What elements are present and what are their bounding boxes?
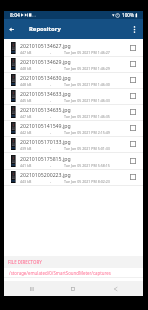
staticText: /storage/emulated/0/SmartSoundMeter/capt… [9, 270, 111, 276]
staticText: 442 kB [20, 130, 32, 135]
button[interactable]: Select 20210105141549.jpg [126, 120, 140, 136]
staticText: FILE DIRECTORY [8, 259, 42, 265]
button[interactable]: Select 20210105134627.jpg [126, 40, 140, 56]
button[interactable]: Select 20210105134630.jpg [126, 72, 140, 88]
staticText: 20210105134629.jpg [20, 58, 71, 65]
staticText: 448 kB [20, 82, 32, 87]
staticText: 20210105134635.jpg [20, 106, 71, 113]
staticText: 448 kB [20, 66, 32, 71]
staticText: 445 kB [20, 98, 32, 103]
button[interactable]: Select 20210105134633.jpg [126, 88, 140, 104]
button[interactable]: 20210105141549.jpg [4, 120, 143, 136]
button[interactable]: Repository [29, 25, 61, 33]
staticText: 20210105170133.jpg [20, 138, 71, 145]
staticText: Tue Jan 05 2021 PM 8:02:23 [64, 179, 110, 184]
staticText: 439 kB [20, 146, 32, 151]
staticText: 8:04 [10, 12, 20, 19]
button[interactable]: Select 20210105134629.jpg [126, 56, 140, 72]
button[interactable]: 20210105170133.jpg [4, 136, 143, 152]
button[interactable]: 20210105134629.jpg [4, 56, 143, 72]
button[interactable]: Select 20210105175815.jpg [126, 153, 140, 169]
button[interactable]: 20210105134627.jpg [4, 40, 143, 56]
button[interactable]: Back [5, 19, 18, 39]
staticText: - [50, 66, 52, 71]
staticText: - [50, 82, 52, 87]
button[interactable]: Select 20210105170133.jpg [126, 136, 140, 152]
button[interactable]: 20210105175815.jpg [4, 153, 143, 169]
button[interactable]: 20210105200223.jpg [4, 169, 143, 185]
staticText: 20210105134630.jpg [20, 74, 71, 81]
button[interactable]: 20210105134633.jpg [4, 88, 143, 104]
staticText: 20210105134627.jpg [20, 42, 71, 49]
staticText: 20210105141549.jpg [20, 122, 71, 129]
staticText: 443 kB [20, 179, 32, 184]
button[interactable]: More options [128, 19, 141, 39]
staticText: Tue Jan 05 2021 PM 5:58:15 [64, 163, 110, 168]
staticText: - [50, 163, 52, 168]
staticText: 20210105175815.jpg [20, 155, 71, 162]
staticText: Tue Jan 05 2021 PM 1:46:30 [64, 82, 110, 87]
button[interactable]: Home [66, 281, 80, 296]
staticText: 100% [122, 12, 134, 18]
staticText: - [50, 130, 52, 135]
staticText: Tue Jan 05 2021 PM 5:01:33 [64, 146, 110, 151]
button[interactable]: Back [108, 281, 122, 296]
staticText: Tue Jan 05 2021 PM 2:15:49 [64, 130, 110, 135]
button[interactable]: Select 20210105134635.jpg [126, 104, 140, 120]
staticText: Tue Jan 05 2021 PM 1:46:33 [64, 98, 110, 103]
staticText: 441 kB [20, 163, 32, 168]
staticText: Tue Jan 05 2021 PM 1:46:35 [64, 114, 110, 119]
staticText: 447 kB [20, 50, 32, 55]
staticText: Tue Jan 05 2021 PM 1:46:27 [64, 50, 110, 55]
staticText: - [50, 50, 52, 55]
button[interactable]: 20210105134630.jpg [4, 72, 143, 88]
button[interactable]: 20210105134635.jpg [4, 104, 143, 120]
staticText: - [50, 146, 52, 151]
staticText: - [50, 98, 52, 103]
button[interactable]: Recents [25, 281, 39, 296]
staticText: 20210105200223.jpg [20, 171, 71, 178]
staticText: Tue Jan 05 2021 PM 1:46:29 [64, 66, 110, 71]
staticText: 447 kB [20, 114, 32, 119]
staticText: - [50, 179, 52, 184]
staticText: - [50, 114, 52, 119]
button[interactable]: Select 20210105200223.jpg [126, 169, 140, 185]
staticText: 20210105134633.jpg [20, 90, 71, 97]
